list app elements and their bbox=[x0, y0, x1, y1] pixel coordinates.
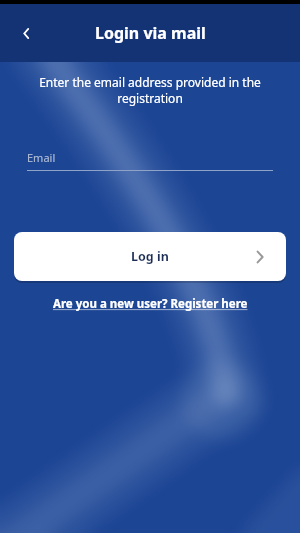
button[interactable]: Log in bbox=[14, 232, 286, 281]
button[interactable] bbox=[4, 11, 48, 55]
staticText: Email bbox=[27, 150, 56, 165]
button[interactable]: Are you a new user? Register here bbox=[53, 296, 248, 312]
staticText: Log in bbox=[131, 248, 169, 265]
staticText: Enter the email address provided in the … bbox=[0, 74, 300, 106]
staticText: Login via mail bbox=[95, 22, 206, 44]
button[interactable]: Email bbox=[27, 150, 273, 171]
